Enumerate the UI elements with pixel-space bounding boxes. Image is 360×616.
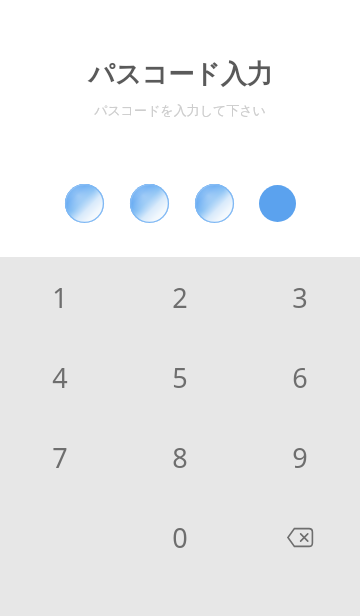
staticText: 6	[292, 359, 308, 396]
staticText: 0	[172, 519, 188, 556]
button[interactable]: 2	[120, 257, 240, 337]
staticText: 7	[52, 439, 68, 476]
staticText: パスコード入力	[88, 58, 273, 91]
button[interactable]: 6	[240, 337, 360, 417]
button[interactable]: 0	[120, 497, 240, 577]
staticText: 9	[292, 439, 308, 476]
staticText: 4	[52, 359, 68, 396]
button[interactable]: 9	[240, 417, 360, 497]
staticText: 8	[172, 439, 188, 476]
button[interactable]: 8	[120, 417, 240, 497]
button[interactable]: 1	[0, 257, 120, 337]
staticText: 2	[172, 279, 188, 316]
button[interactable]: 7	[0, 417, 120, 497]
button[interactable]: 3	[240, 257, 360, 337]
button[interactable]: 5	[120, 337, 240, 417]
staticText: 3	[292, 279, 308, 316]
button[interactable]: 4	[0, 337, 120, 417]
staticText: パスコードを入力して下さい	[94, 102, 266, 118]
button[interactable]: Backspace	[240, 497, 360, 577]
staticText: 5	[172, 359, 188, 396]
staticText: 1	[52, 279, 68, 316]
